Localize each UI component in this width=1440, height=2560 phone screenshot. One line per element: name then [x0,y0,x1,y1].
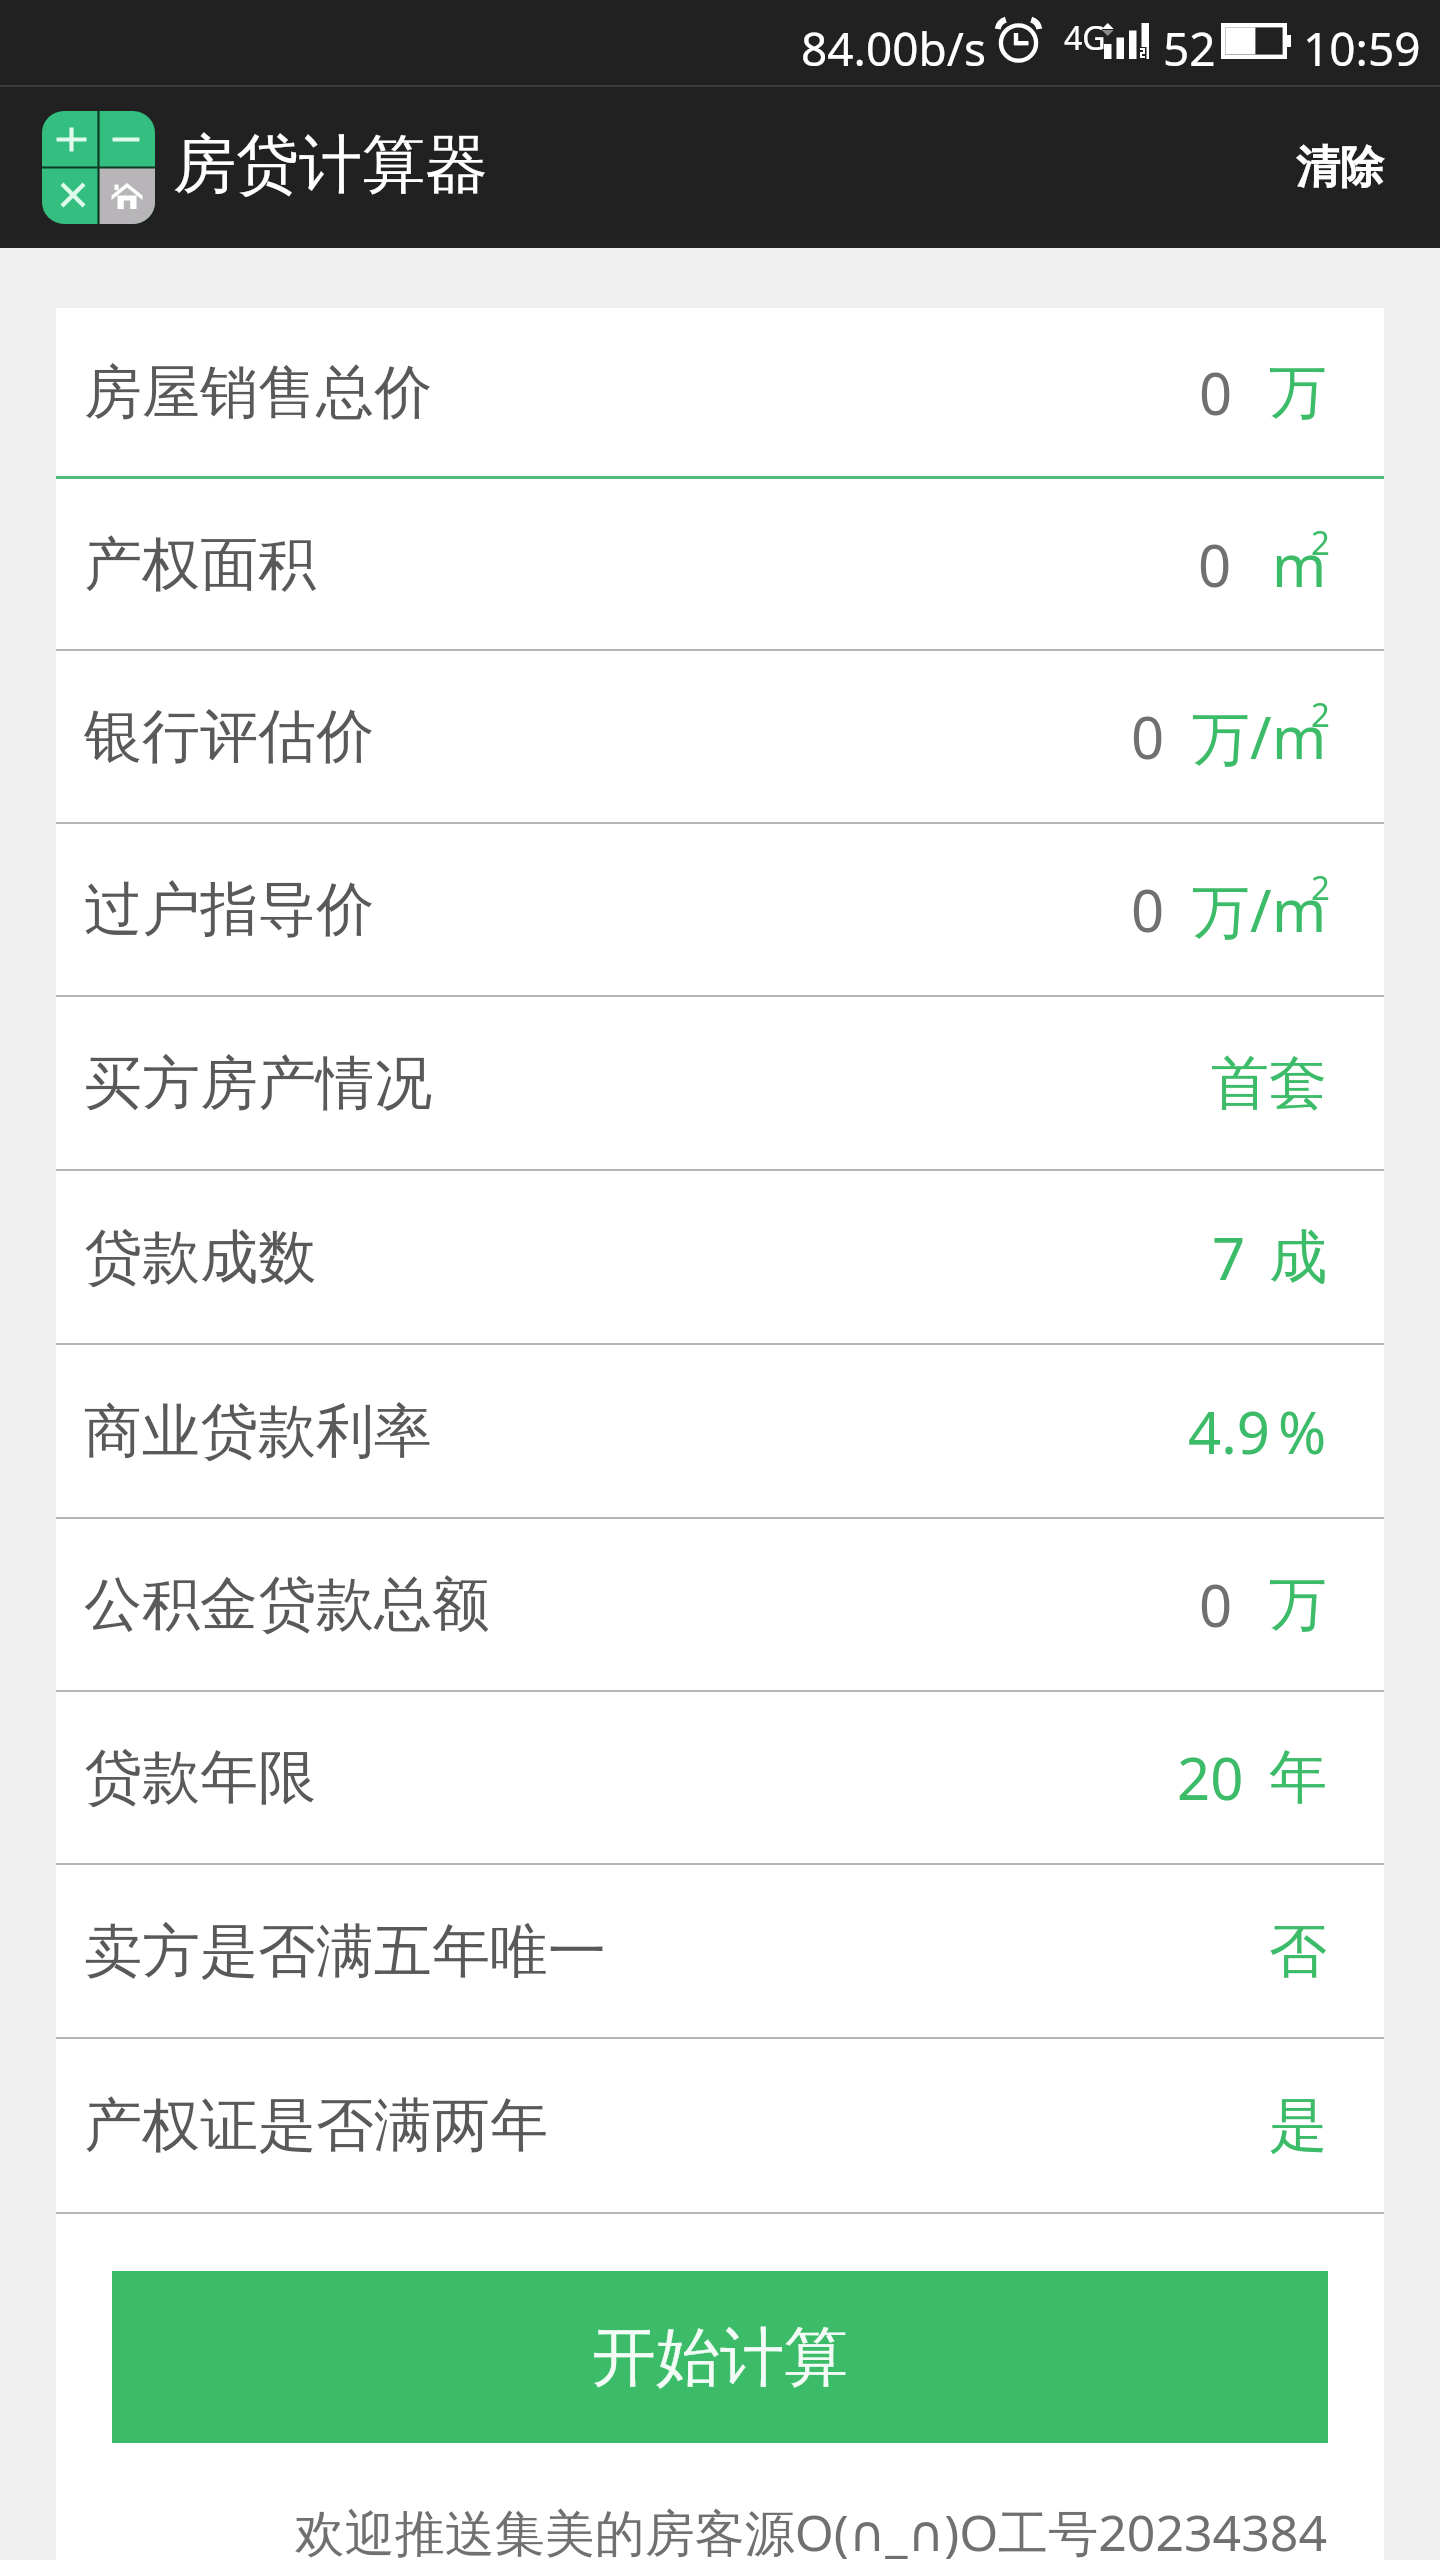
button[interactable]: 开始计算 [112,2271,1328,2443]
staticText: 公积金贷款总额 [84,1568,490,1641]
staticText: 年 [1269,1741,1327,1814]
staticText: 买方房产情况 [84,1047,432,1120]
staticText: 2 [1311,520,1330,565]
button[interactable]: 过户指导价 [56,824,1384,995]
staticText: m [1272,697,1327,776]
staticText: 商业贷款利率 [84,1395,432,1468]
button[interactable]: 产权证是否满两年 [56,2039,1384,2212]
button[interactable]: 买方房产情况 [56,997,1384,1169]
staticText: 4G [1064,16,1106,60]
staticText: 房屋销售总价 [84,356,432,429]
staticText: 4.9 [1188,1392,1270,1471]
staticText: m [1272,525,1327,604]
staticText: 0 [1198,525,1232,604]
button[interactable]: 商业贷款利率 [56,1345,1384,1517]
staticText: 52 [1163,17,1216,80]
staticText: 清除 [1296,140,1384,195]
button[interactable]: 公积金贷款总额 [56,1519,1384,1690]
button[interactable]: 贷款成数 [56,1171,1384,1343]
staticText: 2 [1311,865,1330,910]
other: App icon [42,111,155,224]
staticText: 卖方是否满五年唯一 [84,1915,606,1988]
staticText: 欢迎推送集美的房客源O(∩_∩)O工号20234384 [56,2498,1327,2560]
staticText: 万/ [1192,697,1272,776]
staticText: 0 [1199,353,1233,432]
button[interactable]: 卖方是否满五年唯一 [56,1865,1384,2037]
staticText: m [1272,870,1327,949]
staticText: 10:59 [1303,17,1421,80]
button[interactable]: 清除 [1282,87,1398,248]
staticText: 万/ [1192,870,1272,949]
staticText: 万 [1269,1568,1327,1641]
staticText: 0 [1199,1565,1233,1644]
staticText: 万 [1269,356,1327,429]
staticText: 2 [1311,692,1330,737]
staticText: 银行评估价 [84,700,374,773]
staticText: 20 [1177,1738,1244,1817]
button[interactable]: 贷款年限 [56,1692,1384,1863]
staticText: 过户指导价 [84,873,374,946]
staticText: 产权证是否满两年 [84,2089,548,2162]
staticText: 贷款年限 [84,1741,316,1814]
staticText: 84.00b/s [801,17,987,80]
staticText: % [1278,1392,1327,1471]
button[interactable]: 房屋销售总价 [56,308,1384,476]
staticText: 贷款成数 [84,1221,316,1294]
staticText: 0 [1131,870,1165,949]
button[interactable]: 产权面积 [56,479,1384,649]
staticText: 是 [1269,2089,1327,2162]
staticText: 成 [1269,1221,1327,1294]
staticText: 房贷计算器 [173,125,488,204]
staticText: 否 [1269,1915,1327,1988]
staticText: 开始计算 [592,2317,848,2398]
staticText: 7 [1212,1218,1246,1297]
staticText: 产权面积 [84,528,316,601]
staticText: 0 [1131,697,1165,776]
button[interactable]: 银行评估价 [56,651,1384,822]
staticText: 首套 [1211,1047,1327,1120]
